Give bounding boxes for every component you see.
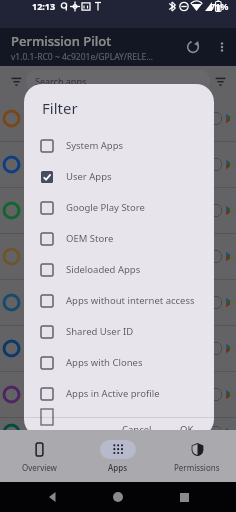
staticText: Search apps — [35, 75, 87, 87]
button[interactable]: Home — [105, 484, 131, 510]
staticText: Sideloaded Apps — [66, 263, 141, 276]
staticText: OK — [180, 423, 194, 432]
staticText: Apps with Clones — [66, 356, 143, 369]
staticText: 12:13 — [32, 0, 56, 12]
button[interactable] — [200, 250, 222, 263]
staticText: Filter — [42, 98, 78, 118]
staticText: OEM Store — [66, 232, 114, 245]
button[interactable] — [0, 418, 236, 446]
button[interactable] — [200, 388, 222, 401]
staticText: Shared User ID — [66, 325, 134, 338]
staticText: Cancel — [122, 423, 152, 432]
button[interactable] — [41, 409, 214, 417]
button[interactable]: Google Play Store — [41, 192, 214, 223]
button[interactable]: OK — [172, 418, 202, 437]
button[interactable]: User Apps — [41, 161, 214, 192]
button[interactable]: OEM Store — [41, 223, 214, 254]
button[interactable] — [0, 188, 236, 233]
staticText: System Apps — [66, 139, 124, 152]
staticText: 71% — [210, 0, 229, 12]
button[interactable]: More options — [208, 33, 236, 61]
button[interactable]: Apps in Active profile — [41, 378, 214, 409]
button[interactable]: System Apps — [41, 130, 214, 161]
button[interactable]: Apps without internet access — [41, 285, 214, 316]
button[interactable] — [0, 280, 236, 325]
button[interactable]: Cancel — [114, 418, 160, 437]
staticText: Apps — [108, 462, 128, 473]
button[interactable]: Recents — [171, 484, 197, 510]
staticText: Permissions — [174, 462, 220, 473]
staticText: Permission Pilot — [11, 32, 112, 50]
button[interactable] — [200, 342, 222, 355]
button[interactable]: Filter — [210, 71, 230, 91]
button[interactable]: Overview — [0, 430, 78, 482]
staticText: Apps in Active profile — [66, 387, 160, 400]
button[interactable]: Apps with Clones — [41, 347, 214, 378]
button[interactable] — [0, 326, 236, 371]
staticText: User Apps — [66, 170, 112, 183]
button[interactable] — [0, 372, 236, 417]
staticText: Apps without internet access — [66, 294, 195, 307]
button[interactable]: Search apps — [26, 70, 210, 92]
button[interactable]: Permissions — [157, 430, 236, 482]
button[interactable]: Sort — [6, 71, 26, 91]
button[interactable] — [200, 204, 222, 217]
button[interactable]: Shared User ID — [41, 316, 214, 347]
staticText: v1.0.1-RC0 ~ 4c9201e/GPLAY/RELE… — [11, 51, 153, 63]
button[interactable] — [200, 112, 222, 125]
button[interactable]: Back — [40, 484, 66, 510]
button[interactable]: Refresh — [178, 32, 208, 62]
staticText: Google Play Store — [66, 201, 145, 214]
button[interactable] — [200, 158, 222, 171]
button[interactable]: Sideloaded Apps — [41, 254, 214, 285]
button[interactable] — [200, 296, 222, 309]
button[interactable] — [0, 142, 236, 187]
button[interactable] — [200, 426, 222, 439]
button[interactable] — [0, 234, 236, 279]
button[interactable]: Apps — [78, 430, 157, 482]
button[interactable] — [0, 96, 236, 141]
staticText: Overview — [22, 462, 57, 473]
